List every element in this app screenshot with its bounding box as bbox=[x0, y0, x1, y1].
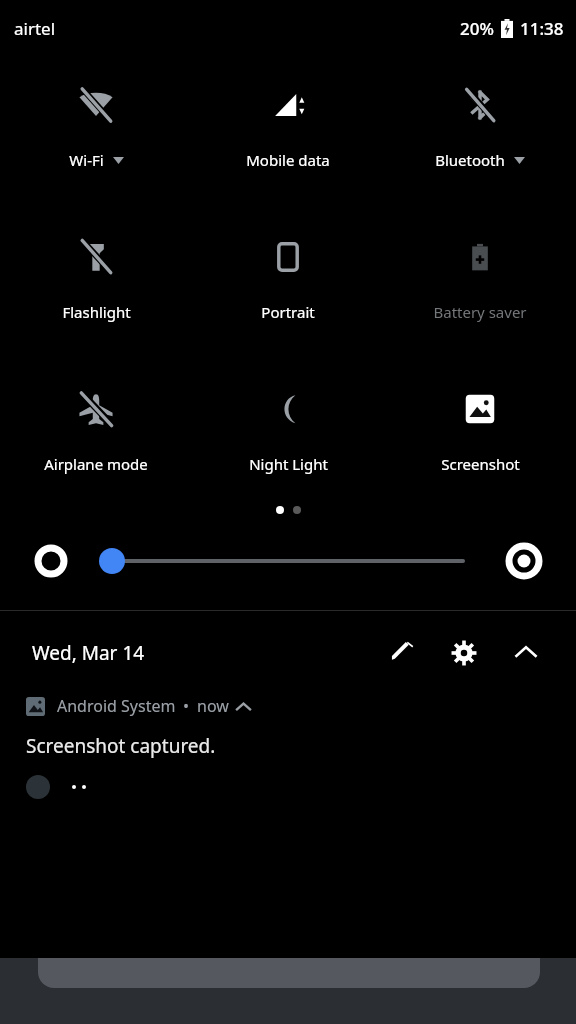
staticText: now bbox=[197, 695, 229, 717]
button[interactable]: Portrait bbox=[192, 230, 384, 326]
button[interactable]: Screenshot bbox=[384, 382, 576, 478]
staticText: Flashlight bbox=[62, 302, 131, 322]
button[interactable]: Mobile data bbox=[192, 78, 384, 174]
staticText: Wed, Mar 14 bbox=[32, 640, 145, 666]
button[interactable]: Edit bbox=[376, 627, 428, 679]
staticText: Screenshot bbox=[441, 454, 520, 474]
staticText: Wi-Fi bbox=[69, 150, 104, 170]
button[interactable]: Night Light bbox=[192, 382, 384, 478]
staticText: airtel bbox=[14, 17, 56, 40]
staticText: Battery saver bbox=[433, 302, 527, 322]
button[interactable]: Android System bbox=[0, 695, 576, 799]
button[interactable]: Wi-Fi bbox=[0, 78, 192, 174]
staticText: 20% bbox=[460, 17, 494, 40]
staticText: Airplane mode bbox=[44, 454, 148, 474]
button[interactable]: Airplane mode bbox=[0, 382, 192, 478]
button[interactable]: Settings bbox=[438, 627, 490, 679]
staticText: Night Light bbox=[249, 454, 328, 474]
staticText: Screenshot captured. bbox=[26, 733, 216, 759]
button[interactable]: Battery saver bbox=[384, 230, 576, 326]
button[interactable]: Bluetooth bbox=[384, 78, 576, 174]
staticText: Mobile data bbox=[246, 150, 330, 170]
button[interactable]: Flashlight bbox=[0, 230, 192, 326]
staticText: Portrait bbox=[261, 302, 315, 322]
button[interactable]: Collapse bbox=[500, 627, 552, 679]
staticText: Android System bbox=[57, 695, 176, 717]
staticText: 11:38 bbox=[520, 17, 564, 40]
staticText: • bbox=[183, 695, 190, 717]
staticText: Bluetooth bbox=[435, 150, 505, 170]
